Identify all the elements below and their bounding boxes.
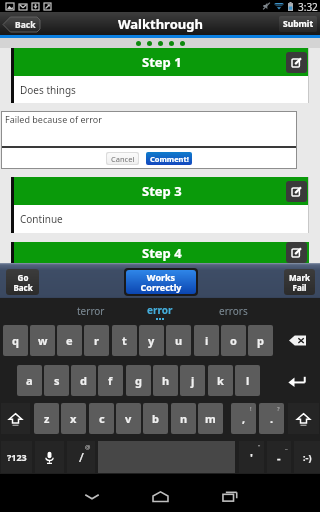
staticText: !	[250, 405, 252, 413]
button[interactable]: /	[67, 441, 95, 473]
staticText: Works Correctly	[140, 271, 182, 293]
button[interactable]: r	[84, 325, 109, 356]
staticText: x	[70, 411, 77, 426]
button[interactable]: Edit	[286, 52, 307, 73]
staticText: 3:32	[298, 0, 318, 12]
button[interactable]: Voice input	[35, 441, 64, 473]
button[interactable]: terror	[66, 298, 116, 324]
staticText: Go Back	[13, 272, 33, 293]
staticText: r	[94, 333, 99, 348]
staticText: terror	[77, 304, 105, 318]
staticText: '	[250, 450, 253, 465]
staticText: g	[135, 373, 142, 388]
button[interactable]: Back	[3, 17, 40, 32]
button[interactable]: Edit	[286, 242, 307, 263]
staticText: h	[162, 373, 170, 388]
staticText: s	[54, 373, 60, 388]
button[interactable]: i	[194, 325, 219, 356]
button[interactable]: v	[116, 403, 141, 434]
button[interactable]: j	[180, 365, 205, 396]
staticText: :-)	[303, 451, 312, 463]
button[interactable]: .	[259, 403, 284, 434]
button[interactable]: u	[166, 325, 191, 356]
staticText: f	[108, 373, 113, 388]
staticText: ?	[277, 405, 280, 413]
button[interactable]: Works Correctly	[126, 270, 196, 294]
staticText: ?123	[7, 451, 27, 463]
staticText: i	[205, 333, 209, 348]
button[interactable]: error	[135, 298, 185, 324]
button[interactable]: Go Back	[6, 269, 39, 295]
button[interactable]: e	[57, 325, 82, 356]
staticText: -	[277, 450, 281, 465]
button[interactable]: Mark Fail	[284, 269, 315, 295]
staticText: _	[285, 443, 288, 451]
button[interactable]: q	[3, 325, 28, 356]
button[interactable]: Shift	[1, 403, 30, 434]
button[interactable]: d	[71, 365, 96, 396]
button[interactable]: k	[208, 365, 233, 396]
button[interactable]: Shift	[288, 403, 319, 434]
button[interactable]: o	[221, 325, 246, 356]
staticText: "	[258, 443, 261, 451]
staticText: Continue	[20, 212, 63, 226]
button[interactable]: l	[235, 365, 260, 396]
staticText: Failed because of error	[5, 113, 102, 125]
button[interactable]: p	[248, 325, 273, 356]
staticText: Mark Fail	[289, 272, 310, 293]
button[interactable]: y	[139, 325, 164, 356]
staticText: .	[270, 411, 274, 426]
button[interactable]: :-)	[294, 441, 320, 473]
staticText: Step 3	[142, 182, 182, 200]
button[interactable]: h	[153, 365, 178, 396]
staticText: n	[180, 411, 188, 426]
button[interactable]: ?123	[1, 441, 32, 473]
button[interactable]: g	[126, 365, 151, 396]
button[interactable]: b	[143, 403, 168, 434]
staticText: /	[79, 448, 84, 466]
staticText: Step 4	[142, 244, 182, 262]
button[interactable]: Backspace	[278, 325, 318, 356]
button[interactable]: Submit	[279, 16, 317, 32]
button[interactable]: ,	[231, 403, 256, 434]
staticText: @	[85, 443, 91, 451]
button[interactable]: m	[198, 403, 223, 434]
button[interactable]: s	[44, 365, 69, 396]
staticText: u	[175, 333, 183, 348]
staticText: v	[125, 411, 132, 426]
staticText: p	[257, 333, 264, 348]
staticText: k	[217, 373, 224, 388]
button[interactable]: n	[171, 403, 196, 434]
staticText: Step 1	[142, 53, 182, 71]
button[interactable]: errors	[207, 298, 259, 324]
button[interactable]: w	[30, 325, 55, 356]
staticText: Walkthrough	[118, 15, 203, 33]
staticText: o	[230, 333, 237, 348]
staticText: Back	[15, 19, 36, 31]
button[interactable]: Cancel	[107, 153, 138, 164]
button[interactable]: a	[17, 365, 42, 396]
staticText: z	[44, 411, 50, 426]
button[interactable]: x	[61, 403, 86, 434]
button[interactable]: z	[34, 403, 59, 434]
staticText: e	[66, 333, 73, 348]
button[interactable]: f	[98, 365, 123, 396]
button[interactable]: Comment!	[146, 152, 192, 165]
staticText: ,	[242, 411, 246, 426]
button[interactable]: Back	[74, 478, 110, 512]
button[interactable]: Recents	[212, 478, 248, 512]
button[interactable]: -	[267, 441, 291, 473]
button[interactable]: t	[112, 325, 137, 356]
staticText: q	[12, 333, 19, 348]
button[interactable]: Home	[142, 478, 178, 512]
button[interactable]: '	[239, 441, 264, 473]
staticText: Submit	[283, 18, 314, 30]
button[interactable]: Edit	[286, 181, 307, 202]
button[interactable]: Enter	[276, 365, 318, 396]
staticText: j	[191, 373, 195, 388]
staticText: error	[147, 303, 173, 317]
button[interactable]: c	[89, 403, 114, 434]
staticText: Does things	[20, 83, 76, 97]
staticText: b	[152, 411, 159, 426]
